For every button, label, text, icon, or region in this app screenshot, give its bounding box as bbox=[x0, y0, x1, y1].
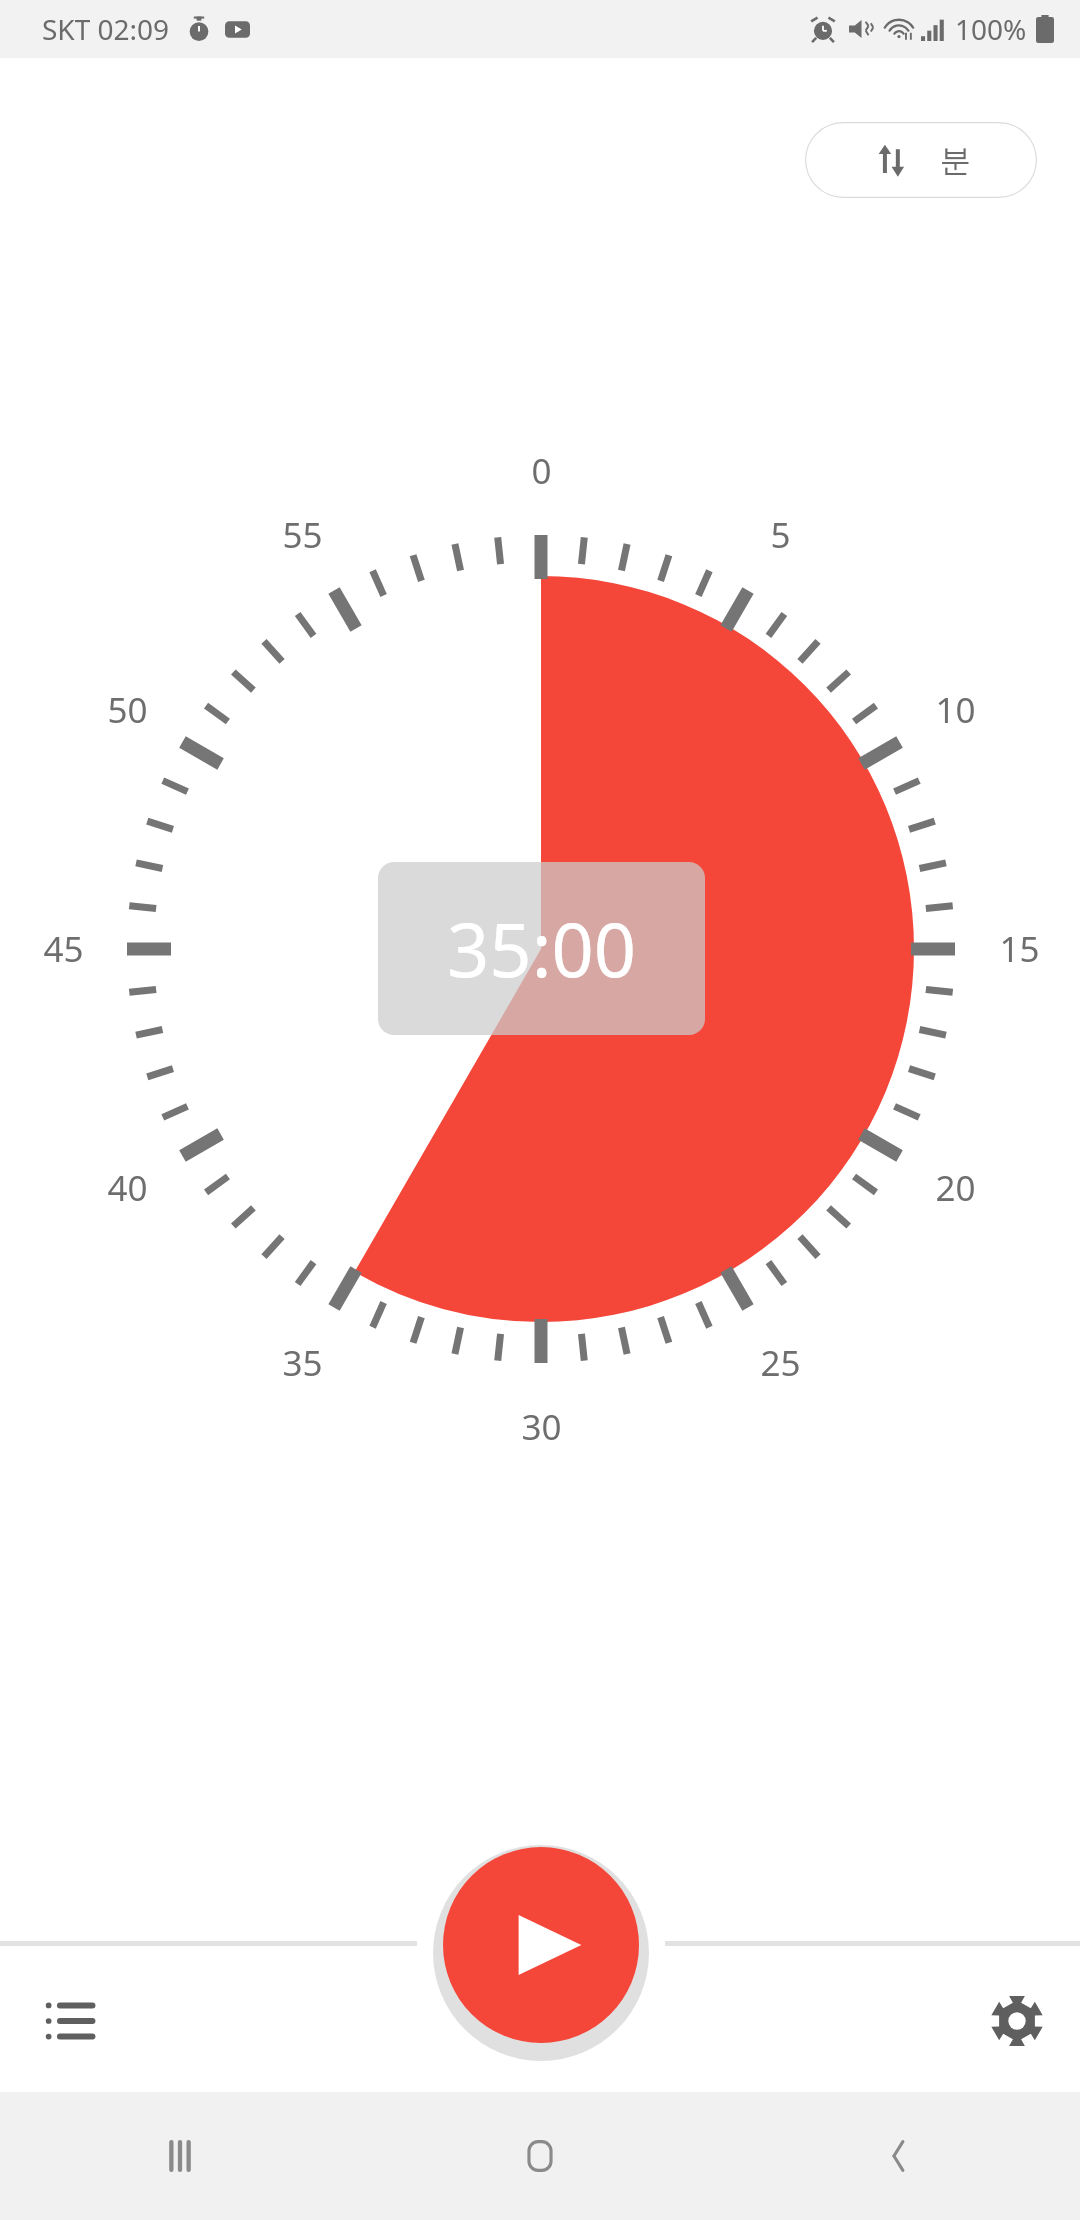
staticText: 분 bbox=[940, 141, 971, 180]
button[interactable]: Timer list bbox=[16, 1966, 126, 2076]
staticText: 45 bbox=[43, 925, 84, 973]
button[interactable]: Settings bbox=[962, 1966, 1072, 2076]
staticText: 40 bbox=[107, 1164, 148, 1212]
staticText: 5 bbox=[770, 511, 791, 559]
staticText: 15 bbox=[999, 925, 1040, 973]
button[interactable]: Back bbox=[720, 2092, 1080, 2220]
staticText: 10 bbox=[935, 686, 976, 734]
staticText: 55 bbox=[282, 511, 323, 559]
button[interactable]: Remaining time 35:00 bbox=[378, 862, 705, 1035]
staticText: 50 bbox=[107, 686, 148, 734]
staticText: 100% bbox=[955, 10, 1027, 48]
button[interactable]: Start timer bbox=[443, 1847, 639, 2043]
staticText: 20 bbox=[935, 1164, 976, 1212]
staticText: 0 bbox=[531, 447, 552, 495]
staticText: 35:00 bbox=[447, 898, 637, 999]
button[interactable]: Home bbox=[360, 2092, 720, 2220]
staticText: 25 bbox=[760, 1339, 801, 1387]
staticText: 35 bbox=[282, 1339, 323, 1387]
staticText: SKT 02:09 bbox=[42, 10, 170, 48]
button[interactable]: Recents bbox=[0, 2092, 360, 2220]
staticText: 30 bbox=[521, 1403, 562, 1451]
button[interactable]: Switch unit to minutes bbox=[805, 122, 1037, 198]
button[interactable]: Timer dial 35 minutes bbox=[0, 0, 1080, 2220]
